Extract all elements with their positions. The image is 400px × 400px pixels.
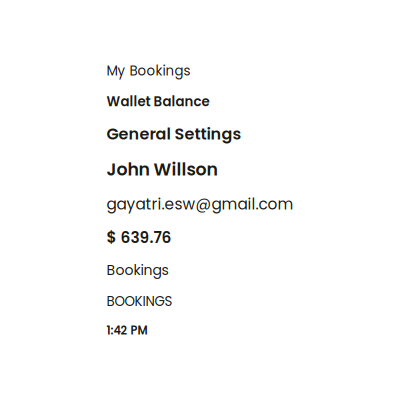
staticText: John Willson: [106, 157, 217, 181]
staticText: Bookings: [106, 260, 168, 280]
staticText: My Bookings: [106, 61, 190, 80]
staticText: gayatri.esw@gmail.com: [106, 193, 293, 215]
staticText: Wallet Balance: [106, 92, 209, 111]
staticText: $ 639.76: [106, 227, 171, 248]
staticText: General Settings: [106, 123, 241, 145]
staticText: BOOKINGS: [106, 292, 172, 311]
staticText: 1:42 PM: [106, 323, 147, 339]
